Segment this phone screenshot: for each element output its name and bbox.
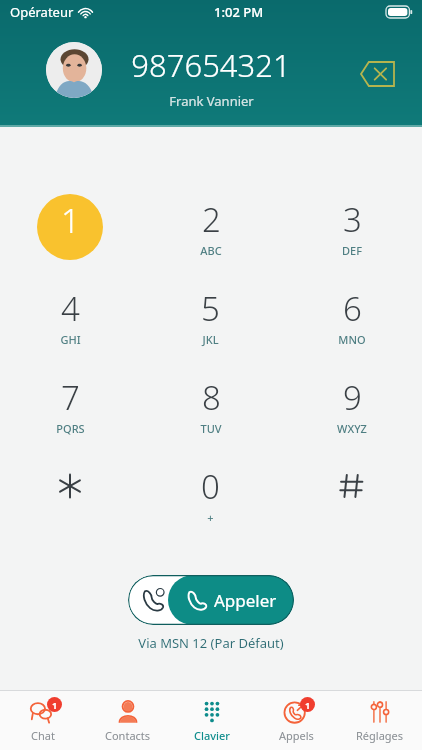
staticText: 8: [202, 375, 221, 420]
button[interactable]: 1: [0, 184, 140, 270]
button[interactable]: 1: [254, 691, 338, 750]
staticText: TUV: [200, 421, 222, 436]
staticText: Appels: [279, 728, 314, 743]
staticText: 0: [201, 464, 220, 509]
staticText: Frank Vannier: [169, 92, 254, 110]
staticText: DEF: [342, 243, 362, 258]
staticText: 3: [343, 197, 362, 242]
staticText: 5: [201, 286, 220, 331]
button[interactable]: 8: [140, 362, 281, 448]
button[interactable]: 1: [0, 691, 85, 750]
button[interactable]: 5: [140, 273, 281, 359]
button[interactable]: 4: [0, 273, 140, 359]
staticText: GHI: [60, 332, 81, 347]
staticText: PQRS: [56, 421, 85, 436]
button[interactable]: 9: [281, 362, 422, 448]
staticText: 2: [202, 197, 221, 242]
staticText: 1: [52, 699, 58, 711]
button[interactable]: Clavier: [170, 691, 254, 750]
staticText: Chat: [31, 728, 55, 743]
button[interactable]: [281, 451, 422, 537]
staticText: MNO: [338, 332, 366, 347]
button[interactable]: [0, 451, 140, 537]
button[interactable]: Backspace: [358, 55, 396, 93]
staticText: Clavier: [194, 728, 230, 743]
button[interactable]: 7: [0, 362, 140, 448]
staticText: 6: [343, 286, 362, 331]
button[interactable]: Contact photo: [46, 42, 102, 98]
staticText: 4: [61, 286, 80, 331]
staticText: 7: [61, 375, 80, 420]
staticText: ABC: [200, 243, 222, 258]
staticText: Via MSN 12 (Par Défaut): [138, 634, 284, 652]
staticText: WXYZ: [337, 421, 367, 436]
staticText: +: [207, 510, 214, 525]
staticText: Contacts: [105, 728, 151, 743]
staticText: Appeler: [214, 589, 277, 612]
staticText: 1: [61, 198, 80, 243]
staticText: 987654321: [131, 44, 291, 86]
button[interactable]: 6: [281, 273, 422, 359]
button[interactable]: 2: [140, 184, 281, 270]
staticText: 9: [343, 375, 362, 420]
button[interactable]: Appeler: [128, 575, 294, 625]
button[interactable]: Contacts: [85, 691, 170, 750]
staticText: Réglages: [356, 728, 404, 743]
staticText: JKL: [202, 332, 219, 347]
staticText: 1:02 PM: [214, 3, 264, 21]
button[interactable]: Réglages: [338, 691, 422, 750]
staticText: Opérateur: [10, 3, 74, 21]
button[interactable]: 3: [281, 184, 422, 270]
staticText: 1: [305, 699, 311, 711]
button[interactable]: 0: [140, 451, 281, 537]
